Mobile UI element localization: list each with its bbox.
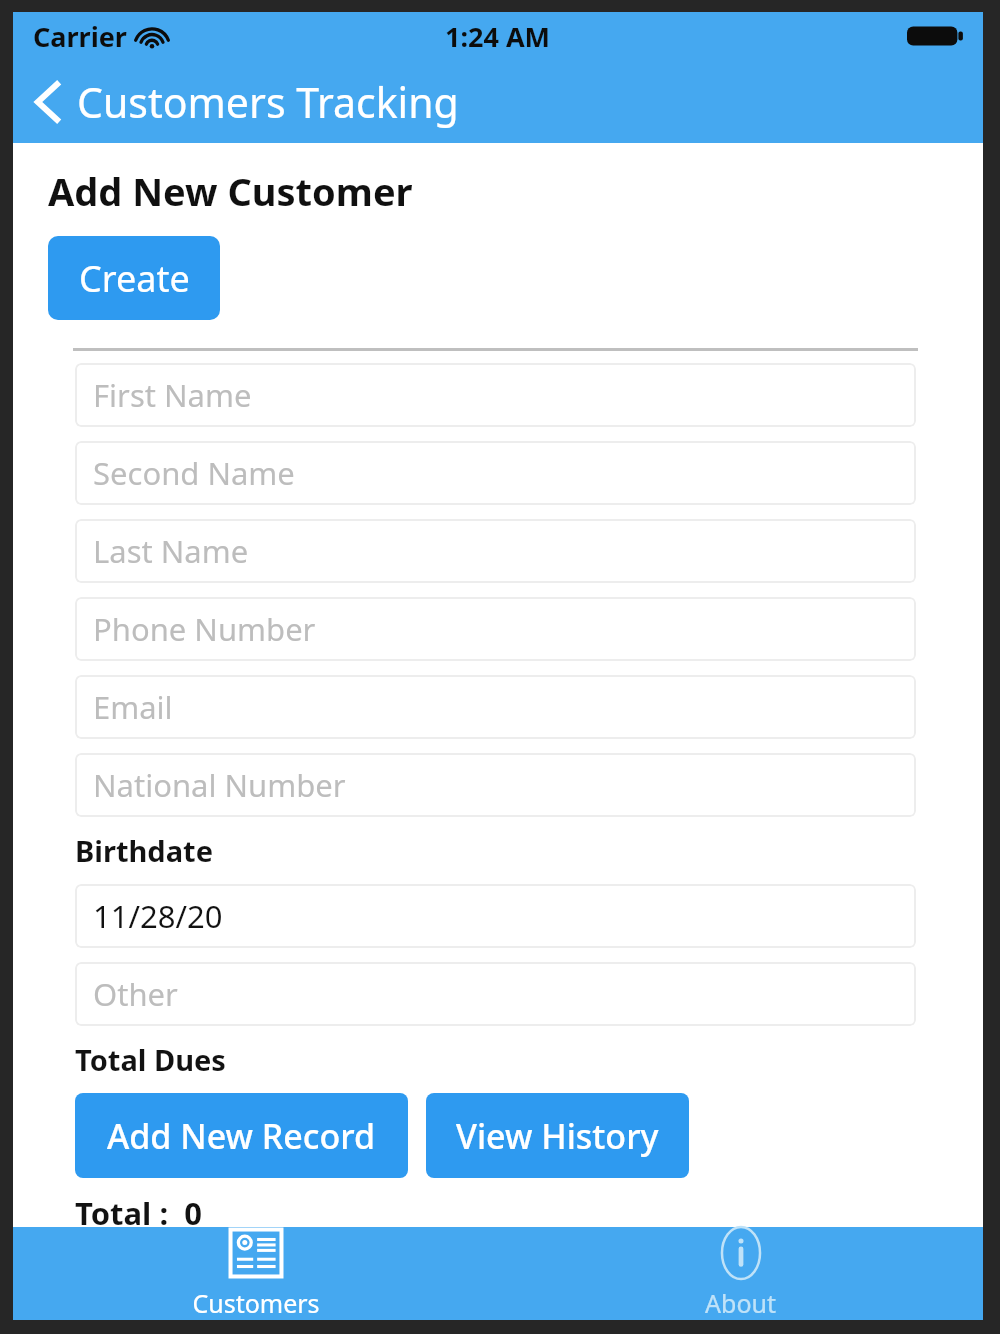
staticText: National Number: [93, 764, 346, 806]
staticText: Carrier: [33, 18, 127, 55]
staticText: 1:24 AM: [445, 18, 551, 55]
button[interactable]: Phone Number: [75, 597, 916, 661]
button[interactable]: Back: [13, 74, 467, 130]
staticText: Email: [93, 686, 173, 728]
staticText: Create: [79, 254, 190, 303]
button[interactable]: Second Name: [75, 441, 916, 505]
staticText: Add New Customer: [48, 165, 413, 217]
staticText: First Name: [93, 374, 252, 416]
button[interactable]: Other: [75, 962, 916, 1026]
button[interactable]: About: [498, 1227, 983, 1320]
button[interactable]: Add New Record: [75, 1093, 408, 1178]
staticText: View History: [456, 1113, 659, 1159]
button[interactable]: First Name: [75, 363, 916, 427]
staticText: Customers Tracking: [77, 74, 459, 130]
button[interactable]: National Number: [75, 753, 916, 817]
staticText: Total Dues: [75, 1040, 226, 1079]
staticText: Phone Number: [93, 608, 316, 650]
staticText: Add New Record: [107, 1113, 376, 1159]
button[interactable]: View History: [426, 1093, 689, 1178]
staticText: Total : 0: [75, 1192, 202, 1227]
button[interactable]: Create: [48, 236, 220, 320]
staticText: Customers: [192, 1286, 320, 1320]
staticText: Other: [93, 973, 178, 1015]
button[interactable]: Email: [75, 675, 916, 739]
staticText: Last Name: [93, 530, 249, 572]
button[interactable]: Last Name: [75, 519, 916, 583]
staticText: About: [705, 1286, 776, 1320]
button[interactable]: Customers: [13, 1227, 498, 1320]
staticText: Birthdate: [75, 831, 213, 870]
button[interactable]: 11/28/20: [75, 884, 916, 948]
staticText: Second Name: [93, 452, 295, 494]
staticText: 11/28/20: [93, 895, 223, 937]
